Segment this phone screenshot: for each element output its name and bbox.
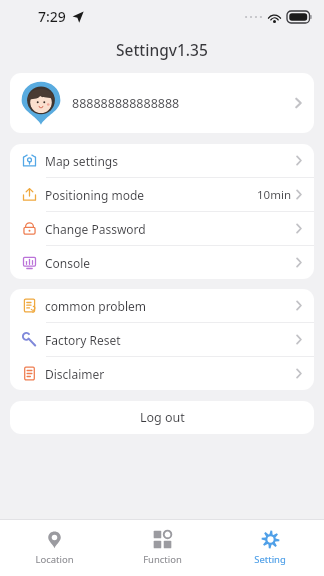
button[interactable]: 888888888888888	[10, 73, 314, 133]
staticText: 10min	[257, 187, 291, 203]
button[interactable]: Map settings	[10, 144, 314, 177]
button[interactable]: Console	[10, 246, 314, 279]
staticText: common problem	[45, 298, 147, 314]
button[interactable]: common problem	[10, 289, 314, 322]
staticText: Positioning mode	[45, 187, 145, 203]
button[interactable]: Disclaimer	[10, 357, 314, 390]
staticText: 888888888888888	[72, 95, 180, 112]
staticText: Console	[45, 255, 91, 271]
button[interactable]: Log out	[10, 401, 314, 434]
staticText: Map settings	[45, 153, 118, 169]
button[interactable]: Function	[108, 520, 216, 576]
button[interactable]: Change Password	[10, 212, 314, 245]
staticText: Location	[35, 553, 74, 566]
button[interactable]: Positioning mode	[10, 178, 314, 211]
staticText: Log out	[140, 409, 185, 426]
staticText: Disclaimer	[45, 366, 105, 382]
staticText: Change Password	[45, 221, 146, 237]
staticText: Settingv1.35	[116, 39, 208, 60]
staticText: Setting	[254, 553, 286, 566]
staticText: Factory Reset	[45, 332, 121, 348]
button[interactable]: Setting	[216, 520, 324, 576]
staticText: 7:29	[38, 7, 66, 26]
button[interactable]: Factory Reset	[10, 323, 314, 356]
staticText: Function	[143, 553, 182, 566]
button[interactable]: Location	[0, 520, 108, 576]
